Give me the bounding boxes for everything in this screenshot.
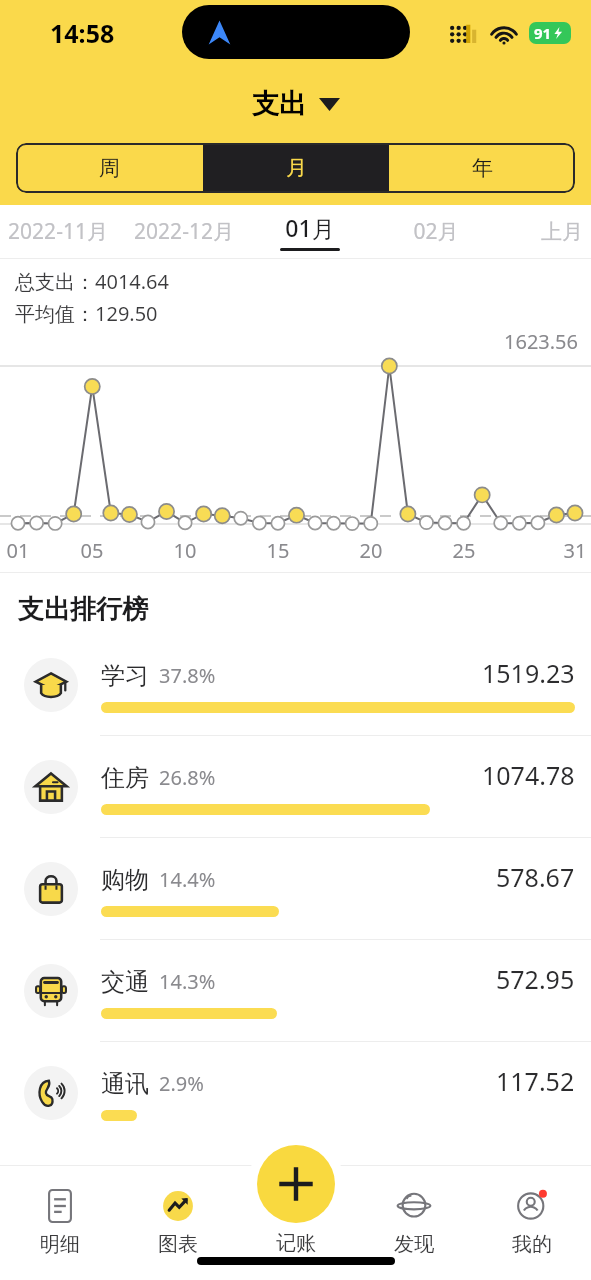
button[interactable]: 明细: [0, 1185, 119, 1257]
staticText: 31: [560, 537, 590, 564]
staticText: 20: [356, 537, 386, 564]
staticText: 购物: [101, 865, 149, 895]
staticText: 15: [263, 537, 293, 564]
button[interactable]: 学习: [0, 634, 591, 735]
staticText: 总支出：4014.64: [15, 268, 169, 295]
staticText: 37.8%: [159, 662, 216, 689]
staticText: 支出排行榜: [18, 593, 148, 626]
staticText: 平均值：129.50: [15, 300, 158, 327]
staticText: 05: [77, 537, 107, 564]
staticText: 578.67: [496, 860, 575, 894]
staticText: 2022-11月: [8, 217, 108, 246]
button[interactable]: 通讯: [0, 1042, 591, 1143]
staticText: 周: [99, 155, 120, 181]
staticText: 2.9%: [159, 1070, 204, 1097]
staticText: 14:58: [50, 16, 115, 50]
button[interactable]: 发现: [355, 1185, 473, 1257]
staticText: 572.95: [496, 962, 575, 996]
staticText: 01: [3, 537, 33, 564]
button[interactable]: 图表: [119, 1185, 237, 1257]
staticText: 26.8%: [159, 764, 216, 791]
staticText: 1074.78: [482, 758, 575, 792]
staticText: 14.4%: [159, 866, 216, 893]
staticText: 记账: [276, 1231, 316, 1256]
button[interactable]: 记账 Add record: [257, 1145, 335, 1223]
button[interactable]: 2022-11月: [0, 205, 121, 258]
staticText: 学习: [101, 661, 149, 691]
staticText: 支出: [252, 87, 306, 121]
staticText: 1519.23: [482, 656, 575, 690]
button[interactable]: 02月: [373, 205, 499, 258]
staticText: 25: [449, 537, 479, 564]
button[interactable]: 购物: [0, 838, 591, 939]
staticText: 交通: [101, 967, 149, 997]
staticText: 我的: [512, 1232, 552, 1257]
staticText: 2022-12月: [134, 217, 234, 246]
button[interactable]: 月: [203, 143, 389, 193]
staticText: 10: [170, 537, 200, 564]
staticText: 117.52: [496, 1064, 575, 1098]
staticText: 发现: [394, 1232, 434, 1257]
button[interactable]: 我的: [473, 1185, 591, 1257]
staticText: 1623.56: [0, 328, 578, 355]
staticText: 通讯: [101, 1069, 149, 1099]
staticText: 月: [286, 155, 307, 181]
staticText: 01月: [285, 212, 335, 243]
button[interactable]: 周: [16, 143, 203, 193]
staticText: 91: [534, 23, 552, 43]
staticText: 图表: [158, 1232, 198, 1257]
button[interactable]: 上月: [499, 205, 591, 258]
button[interactable]: 支出: [242, 84, 350, 124]
button[interactable]: 01月: [247, 205, 373, 258]
staticText: 02月: [413, 217, 459, 246]
staticText: 年: [472, 155, 493, 181]
staticText: 14.3%: [159, 968, 216, 995]
button[interactable]: 2022-12月: [121, 205, 247, 258]
button[interactable]: 住房: [0, 736, 591, 837]
staticText: 明细: [40, 1232, 80, 1257]
staticText: 上月: [541, 219, 583, 245]
button[interactable]: 年: [389, 143, 575, 193]
staticText: 住房: [101, 763, 149, 793]
button[interactable]: 交通: [0, 940, 591, 1041]
